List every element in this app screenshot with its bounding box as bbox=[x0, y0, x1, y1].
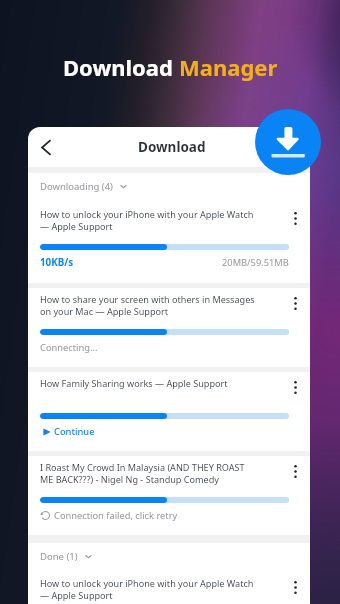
staticText: Download bbox=[63, 52, 179, 82]
staticText: Download bbox=[138, 138, 206, 156]
staticText: How to unlock your iPhone with your Appl… bbox=[40, 577, 279, 602]
button[interactable]: How to unlock your iPhone with your Appl… bbox=[28, 570, 310, 604]
button[interactable]: Download bbox=[255, 109, 321, 175]
button[interactable]: How to share your screen with others in … bbox=[28, 288, 310, 367]
staticText: Done (1) bbox=[40, 550, 78, 563]
button[interactable]: More options bbox=[285, 577, 305, 597]
staticText: How Family Sharing works — Apple Support bbox=[40, 377, 279, 389]
button[interactable]: How to unlock your iPhone with your Appl… bbox=[28, 200, 310, 283]
staticText: Manager bbox=[179, 52, 278, 82]
staticText: Connecting... bbox=[40, 341, 98, 354]
button[interactable]: I Roast My Crowd In Malaysia (AND THEY R… bbox=[28, 456, 310, 535]
button[interactable]: Done (1) bbox=[28, 543, 310, 570]
button[interactable]: How Family Sharing works — Apple Support bbox=[28, 372, 310, 451]
staticText: Downloading (4) bbox=[40, 180, 113, 193]
button[interactable]: Downloading (4) bbox=[28, 173, 310, 200]
button[interactable]: More options bbox=[285, 377, 305, 397]
button[interactable]: Back bbox=[29, 131, 61, 163]
staticText: Connection failed, click retry bbox=[54, 509, 178, 522]
staticText: Continue bbox=[54, 425, 95, 438]
staticText: I Roast My Crowd In Malaysia (AND THEY R… bbox=[40, 461, 279, 486]
button[interactable]: More options bbox=[285, 293, 305, 313]
staticText: How to share your screen with others in … bbox=[40, 293, 279, 318]
staticText: 10KB/s bbox=[40, 256, 74, 269]
staticText: 20MB/59.51MB bbox=[222, 256, 289, 269]
staticText: How to unlock your iPhone with your Appl… bbox=[40, 208, 279, 233]
button[interactable]: More options bbox=[285, 208, 305, 228]
button[interactable]: More options bbox=[285, 461, 305, 481]
